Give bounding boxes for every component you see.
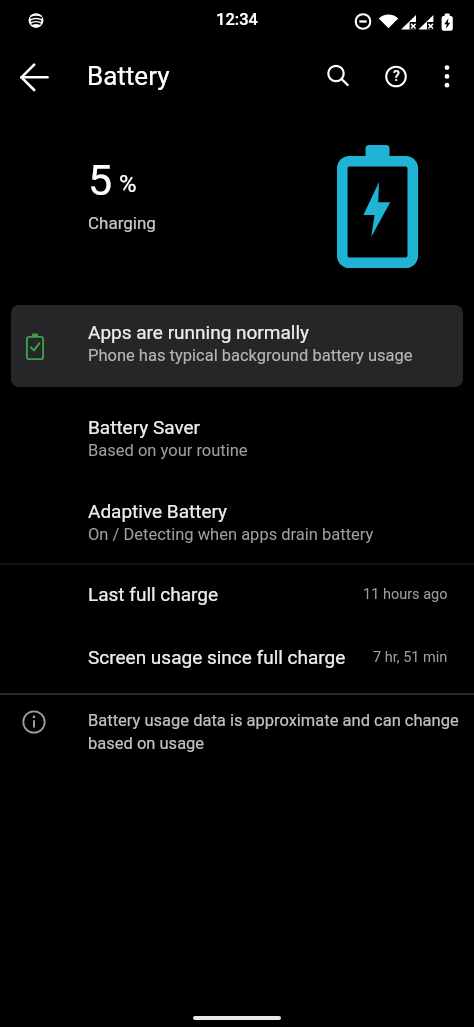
staticText: Phone has typical background battery usa… [88, 346, 413, 365]
staticText: 12:34 [216, 10, 258, 29]
staticText: Screen usage since full charge [88, 646, 346, 668]
staticText: Adaptive Battery [88, 500, 228, 522]
button[interactable] [318, 54, 356, 96]
staticText: Based on your routine [88, 441, 248, 460]
staticText: based on usage [88, 734, 205, 753]
staticText: Battery usage data is approximate and ca… [88, 711, 459, 730]
button[interactable]: Adaptive Battery [0, 484, 474, 563]
button[interactable]: Battery Saver [0, 400, 474, 484]
staticText: 11 hours ago [363, 586, 448, 603]
staticText: Last full charge [88, 583, 219, 605]
button[interactable]: Screen usage since full charge [0, 628, 474, 693]
staticText: 7 hr, 51 min [373, 649, 448, 666]
button[interactable]: ? [377, 57, 415, 97]
staticText: ? [393, 68, 400, 84]
button[interactable] [10, 57, 58, 97]
staticText: 5 [88, 155, 113, 205]
staticText: Apps are running normally [88, 321, 310, 343]
staticText: On / Detecting when apps drain battery [88, 525, 374, 544]
staticText: % [119, 170, 137, 198]
staticText: Battery [87, 61, 170, 91]
button[interactable]: Last full charge [0, 565, 474, 628]
button[interactable] [429, 57, 465, 97]
staticText: Battery Saver [88, 416, 201, 438]
button[interactable]: Apps are running normally [11, 305, 463, 387]
staticText: Charging [88, 213, 156, 233]
